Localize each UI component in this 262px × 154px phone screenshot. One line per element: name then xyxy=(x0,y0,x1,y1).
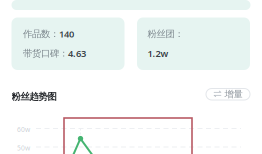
staticText: 1.2w xyxy=(147,47,168,60)
staticText: 作品数： xyxy=(23,28,59,40)
button[interactable]: 增量 xyxy=(206,88,250,100)
staticText: 带货口碑： xyxy=(23,48,68,59)
staticText: 增量 xyxy=(224,88,242,100)
staticText: 粉丝趋势图 xyxy=(11,91,56,102)
staticText: 50w xyxy=(17,143,30,152)
staticText: 4.63 xyxy=(68,47,86,60)
staticText: 粉丝团： xyxy=(147,28,183,40)
staticText: 60w xyxy=(17,125,30,134)
staticText: 140 xyxy=(59,28,74,40)
